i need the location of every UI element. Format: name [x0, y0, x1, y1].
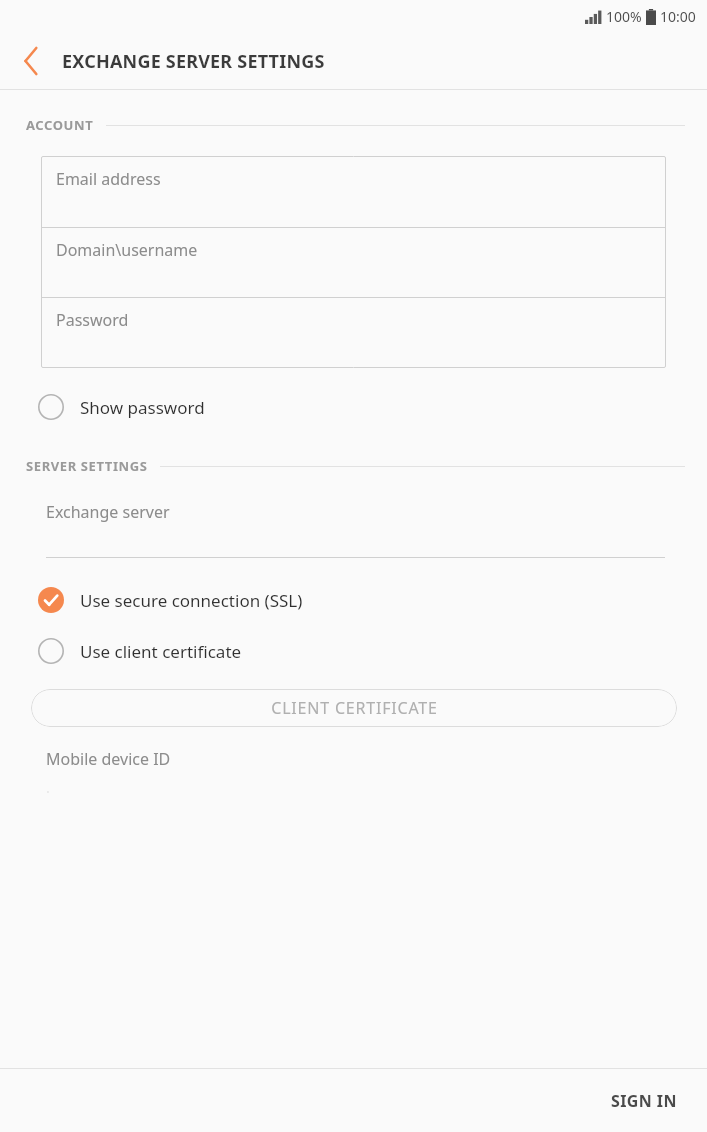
staticText: EXCHANGE SERVER SETTINGS [62, 49, 325, 74]
staticText: Use client certificate [80, 640, 242, 663]
staticText: 10:00 [660, 7, 696, 26]
button[interactable]: Mobile device ID [0, 748, 707, 797]
staticText: Show password [80, 396, 205, 419]
staticText: Exchange server [46, 501, 170, 523]
button[interactable]: CLIENT CERTIFICATE [31, 689, 677, 727]
button[interactable]: Email address [41, 156, 666, 227]
button[interactable]: Password [41, 297, 666, 368]
staticText: Use secure connection (SSL) [80, 589, 303, 612]
staticText: 100% [606, 7, 642, 26]
button[interactable]: Domain\username [41, 227, 666, 297]
staticText: ACCOUNT [26, 116, 94, 134]
button[interactable]: Use secure connection (SSL) [0, 575, 707, 625]
button[interactable]: Exchange server [0, 495, 707, 557]
staticText: CLIENT CERTIFICATE [271, 697, 438, 719]
button[interactable]: Use client certificate [0, 625, 707, 677]
staticText: SERVER SETTINGS [26, 457, 148, 475]
staticText: SIGN IN [611, 1090, 677, 1112]
staticText: Email address [56, 168, 161, 190]
button[interactable]: Show password [0, 381, 707, 433]
staticText: Password [56, 309, 129, 331]
staticText: Mobile device ID [46, 748, 171, 770]
staticText: Domain\username [56, 239, 198, 261]
button[interactable]: SIGN IN [599, 1080, 689, 1122]
button[interactable]: Back [0, 32, 62, 90]
staticText: . [46, 778, 50, 797]
